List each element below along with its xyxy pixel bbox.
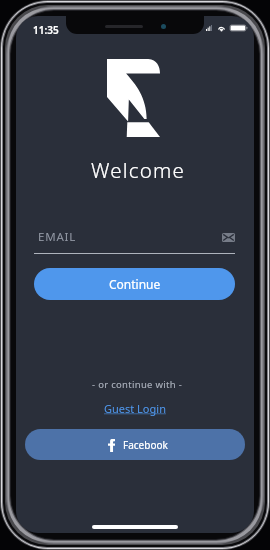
other: Email bbox=[222, 233, 235, 242]
other: Signal bbox=[206, 25, 212, 31]
staticText: 11:35 bbox=[33, 23, 59, 37]
staticText: - or continue with - bbox=[92, 378, 183, 391]
staticText: Welcome bbox=[91, 156, 185, 184]
button[interactable]: Facebook bbox=[25, 429, 245, 460]
staticText: Guest Login bbox=[104, 401, 166, 416]
staticText: EMAIL bbox=[38, 229, 226, 245]
other: Wi-Fi bbox=[218, 26, 225, 31]
staticText: Continue bbox=[109, 276, 161, 292]
staticText: Facebook bbox=[123, 438, 168, 452]
other: Battery bbox=[230, 25, 247, 31]
button[interactable]: Guest Login bbox=[98, 399, 172, 418]
button[interactable]: Continue bbox=[34, 268, 235, 300]
